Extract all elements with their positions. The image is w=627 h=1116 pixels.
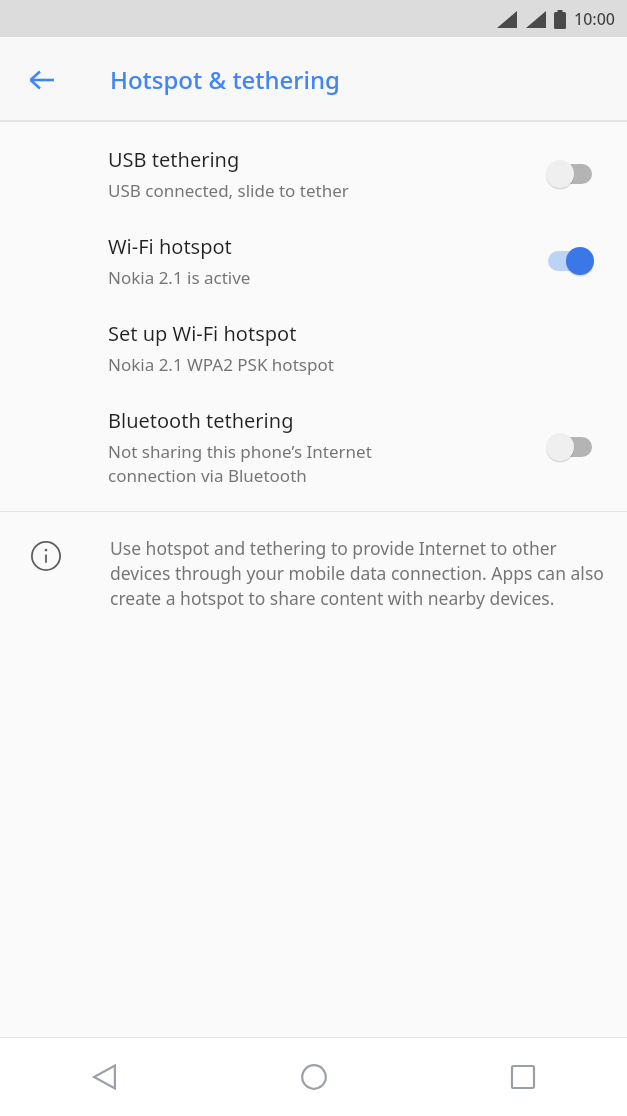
button[interactable]: Recent apps [418, 1038, 627, 1116]
staticText: Not sharing this phone’s Internet connec… [108, 440, 372, 487]
staticText: Bluetooth tethering [108, 407, 294, 434]
staticText: Hotspot & tethering [110, 63, 340, 96]
button[interactable]: Toggle off [541, 429, 599, 465]
button[interactable]: Set up Wi-Fi hotspot [0, 320, 627, 376]
staticText: Use hotspot and tethering to provide Int… [110, 536, 605, 610]
button[interactable]: Back [18, 56, 66, 104]
button[interactable]: Wi-Fi hotspot [0, 233, 627, 289]
staticText: Nokia 2.1 WPA2 PSK hotspot [108, 353, 334, 376]
staticText: USB connected, slide to tether [108, 179, 349, 202]
button[interactable]: Back [0, 1038, 209, 1116]
button[interactable]: USB tethering [0, 146, 627, 202]
staticText: Nokia 2.1 is active [108, 266, 251, 289]
button[interactable]: Bluetooth tethering [0, 407, 627, 487]
button[interactable]: Home [209, 1038, 418, 1116]
button[interactable]: Toggle on [541, 243, 599, 279]
button[interactable]: Toggle off [541, 156, 599, 192]
staticText: 10:00 [574, 8, 615, 30]
staticText: Set up Wi-Fi hotspot [108, 320, 297, 347]
staticText: Wi-Fi hotspot [108, 233, 232, 260]
staticText: USB tethering [108, 146, 240, 173]
